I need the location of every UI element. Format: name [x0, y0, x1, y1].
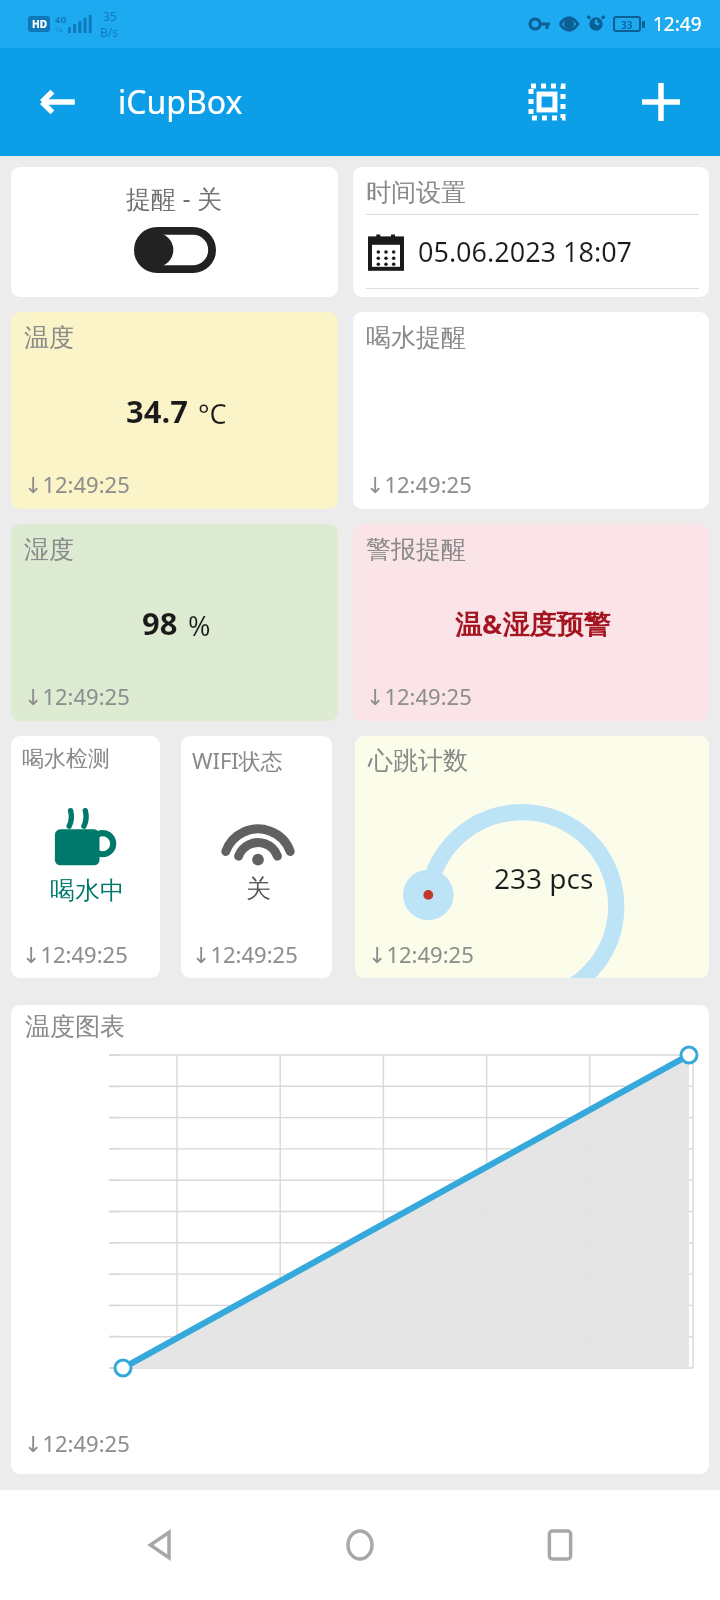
staticText: ↓12:49:25: [22, 939, 128, 969]
staticText: 温&湿度预警: [455, 605, 611, 642]
button[interactable]: 湿度: [11, 524, 338, 721]
button[interactable]: 提醒 - 关: [11, 167, 338, 297]
staticText: WIFI状态: [192, 745, 283, 775]
button[interactable]: 时间设置: [353, 167, 709, 297]
staticText: 4G: [55, 13, 67, 25]
button[interactable]: 心跳计数: [355, 736, 709, 978]
button[interactable]: 温度图表: [11, 1005, 709, 1474]
staticText: ↓12:49:25: [24, 681, 130, 711]
staticText: 05.06.2023 18:07: [418, 233, 633, 270]
button[interactable]: Back: [120, 1505, 200, 1585]
staticText: 温度图表: [25, 1011, 125, 1042]
staticText: 湿度: [24, 534, 74, 565]
staticText: 34.7: [126, 390, 188, 432]
staticText: 33: [621, 18, 633, 30]
staticText: 提醒 - 关: [126, 181, 223, 215]
staticText: ↓12:49:25: [366, 469, 472, 499]
staticText: ↓12:49:25: [24, 1428, 130, 1458]
button[interactable]: 温度: [11, 312, 338, 509]
button[interactable]: 警报提醒: [353, 524, 709, 721]
staticText: ↓12:49:25: [368, 939, 474, 969]
button[interactable]: WIFI状态: [181, 736, 332, 978]
button[interactable]: Recents: [520, 1505, 600, 1585]
staticText: °C: [198, 395, 227, 432]
staticText: iCupBox: [118, 80, 243, 124]
staticText: 12:49: [653, 11, 702, 37]
staticText: B/s: [100, 24, 119, 40]
staticText: 关: [246, 873, 271, 904]
staticText: HD: [32, 17, 47, 31]
button[interactable]: Home: [320, 1505, 400, 1585]
staticText: 喝水提醒: [366, 322, 466, 353]
staticText: 35: [103, 8, 117, 24]
staticText: 98: [142, 602, 178, 644]
staticText: ↓12:49:25: [192, 939, 298, 969]
staticText: 心跳计数: [368, 745, 468, 776]
staticText: 喝水中: [50, 875, 125, 906]
button[interactable]: 喝水检测: [11, 736, 160, 978]
button[interactable]: Back: [26, 70, 90, 134]
staticText: 警报提醒: [366, 534, 466, 565]
staticText: 时间设置: [366, 177, 466, 208]
button[interactable]: Add: [630, 71, 692, 133]
staticText: ↓12:49:25: [24, 469, 130, 499]
staticText: 喝水检测: [22, 745, 110, 773]
staticText: ↓12:49:25: [366, 681, 472, 711]
button[interactable]: Scan: [516, 71, 578, 133]
staticText: 温度: [24, 322, 74, 353]
staticText: 233 pcs: [494, 859, 594, 897]
staticText: %: [188, 607, 211, 644]
button[interactable]: 喝水提醒: [353, 312, 709, 509]
staticText: 1x: [55, 25, 63, 35]
